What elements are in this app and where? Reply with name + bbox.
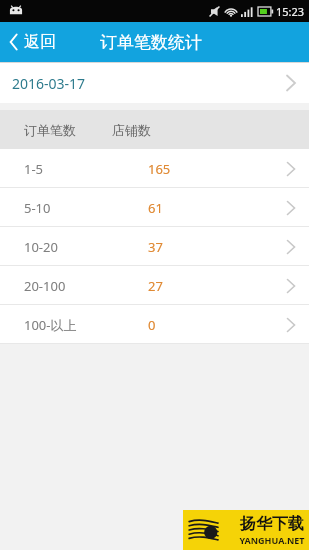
staticText: 165 — [148, 160, 171, 178]
staticText: 店铺数 — [112, 122, 151, 138]
staticText: 0 — [148, 316, 156, 334]
staticText: 2016-03-17 — [12, 74, 86, 93]
staticText: 37 — [148, 238, 163, 256]
staticText: 扬华下载 — [240, 514, 304, 534]
staticText: 1-5 — [24, 160, 44, 178]
staticText: 订单笔数统计 — [100, 32, 202, 53]
button[interactable]: 2016-03-17 — [0, 63, 309, 103]
button[interactable]: 5-10 — [0, 188, 309, 227]
staticText: 订单笔数 — [24, 122, 76, 138]
button[interactable]: 1-5 — [0, 149, 309, 188]
staticText: 20-100 — [24, 277, 66, 295]
staticText: YANGHUA.NET — [239, 534, 305, 546]
button[interactable]: 100-以上 — [0, 305, 309, 344]
staticText: 61 — [148, 199, 163, 217]
staticText: 100-以上 — [24, 316, 77, 334]
button[interactable]: 返回 — [0, 22, 66, 62]
staticText: 5-10 — [24, 199, 51, 217]
button[interactable]: 10-20 — [0, 227, 309, 266]
staticText: 10-20 — [24, 238, 58, 256]
button[interactable]: 20-100 — [0, 266, 309, 305]
staticText: 返回 — [24, 32, 56, 52]
staticText: 15:23 — [276, 4, 305, 19]
staticText: 27 — [148, 277, 163, 295]
